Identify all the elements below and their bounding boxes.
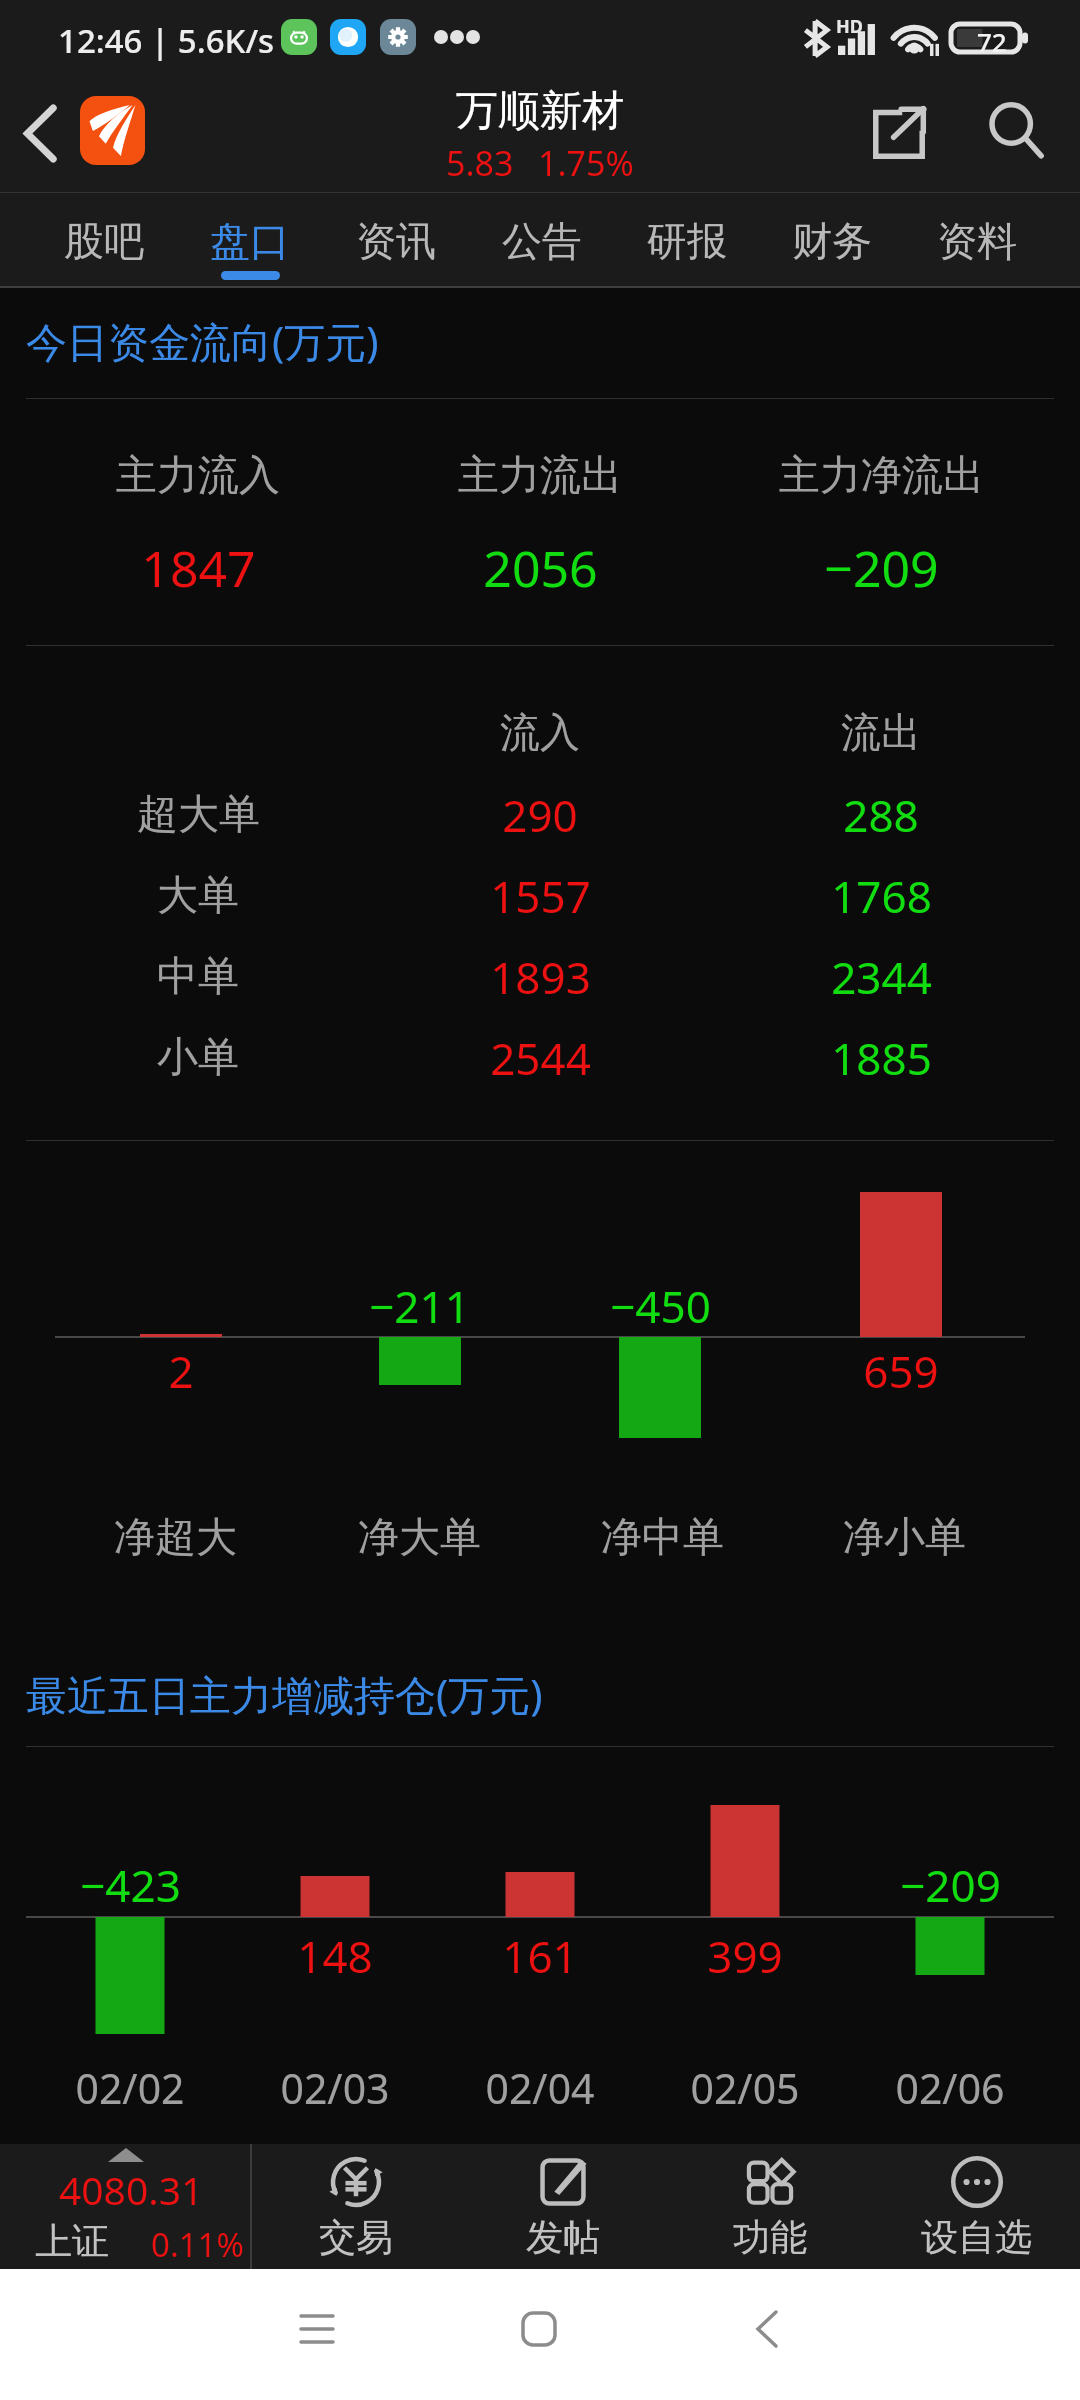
staticText: HD	[836, 14, 863, 39]
button[interactable]: 4080.31	[0, 2144, 250, 2269]
staticText: 1557	[490, 866, 591, 926]
button[interactable]: Home	[479, 2289, 599, 2369]
staticText: 2	[168, 1341, 194, 1401]
staticText: 净大单	[358, 1512, 481, 1564]
staticText: 超大单	[137, 789, 260, 841]
button[interactable]: 功能	[666, 2144, 873, 2269]
button[interactable]: Share	[859, 93, 939, 173]
staticText: 财务	[792, 216, 872, 266]
staticText: 2544	[490, 1028, 591, 1088]
staticText: 流入	[500, 707, 580, 757]
button[interactable]: Back	[707, 2289, 827, 2369]
staticText: 02/03	[280, 2060, 390, 2116]
button[interactable]: Search	[976, 90, 1056, 170]
staticText: 02/05	[690, 2060, 800, 2116]
staticText: −211	[369, 1276, 470, 1336]
staticText: 1.75%	[538, 140, 634, 186]
button[interactable]	[0, 646, 1080, 1140]
staticText: −209	[900, 1855, 1001, 1915]
staticText: 小单	[157, 1032, 239, 1084]
staticText: 4080.31	[59, 2163, 204, 2216]
staticText: 02/02	[75, 2060, 185, 2116]
staticText: 流出	[841, 707, 921, 757]
button[interactable]: Net order-flow bar chart	[0, 1141, 1080, 1641]
staticText: 最近五日主力增减持仓(万元)	[26, 1666, 543, 1722]
staticText: 主力净流出	[779, 450, 984, 502]
staticText: 1768	[831, 866, 932, 926]
staticText: −450	[610, 1276, 711, 1336]
staticText: 大单	[157, 870, 239, 922]
staticText: 1893	[490, 947, 591, 1007]
button[interactable]: 交易	[252, 2144, 459, 2269]
button[interactable]: 财务	[759, 192, 904, 288]
staticText: 净超大	[114, 1512, 237, 1564]
staticText: 研报	[647, 216, 727, 266]
staticText: 万顺新材	[456, 85, 624, 138]
staticText: 659	[863, 1341, 939, 1401]
staticText: 290	[502, 785, 578, 845]
staticText: 股吧	[64, 216, 144, 266]
staticText: −423	[80, 1855, 181, 1915]
button[interactable]: Eastmoney home	[80, 96, 145, 165]
staticText: 净中单	[601, 1512, 724, 1564]
staticText: 设自选	[921, 2214, 1032, 2261]
staticText: 1885	[831, 1028, 932, 1088]
staticText: 发帖	[526, 2214, 600, 2261]
staticText: 02/06	[895, 2060, 1005, 2116]
staticText: 161	[502, 1926, 578, 1986]
staticText: 交易	[319, 2214, 393, 2261]
button[interactable]: Five-day position change chart	[0, 1747, 1080, 2137]
staticText: 今日资金流向(万元)	[26, 313, 379, 369]
staticText: 资料	[937, 216, 1017, 266]
staticText: −209	[824, 534, 939, 602]
button[interactable]: 研报	[614, 192, 759, 288]
staticText: 2056	[483, 534, 598, 602]
staticText: 12:46 | 5.6K/s	[58, 18, 275, 63]
button[interactable]: 设自选	[873, 2144, 1080, 2269]
staticText: 资讯	[356, 216, 436, 266]
button[interactable]	[0, 399, 1080, 645]
staticText: 02/04	[485, 2060, 595, 2116]
staticText: 399	[707, 1926, 783, 1986]
staticText: 0.11%	[151, 2222, 244, 2267]
button[interactable]: 资料	[904, 192, 1049, 288]
staticText: 72	[977, 24, 1007, 52]
staticText: 1847	[141, 534, 256, 602]
staticText: 主力流入	[116, 450, 280, 502]
staticText: 公告	[502, 216, 582, 266]
button[interactable]: 盘口	[177, 192, 323, 288]
staticText: 148	[297, 1926, 373, 1986]
button[interactable]: Back	[6, 98, 76, 168]
staticText: 2344	[831, 947, 932, 1007]
staticText: 功能	[733, 2214, 807, 2261]
staticText: 主力流出	[458, 450, 622, 502]
staticText: 盘口	[210, 216, 290, 266]
button[interactable]: 公告	[469, 192, 614, 288]
button[interactable]: Recent apps	[257, 2289, 377, 2369]
staticText: 中单	[157, 951, 239, 1003]
staticText: 5.83	[446, 140, 514, 186]
staticText: 288	[843, 785, 919, 845]
button[interactable]: 发帖	[459, 2144, 666, 2269]
staticText: 上证	[35, 2218, 109, 2265]
button[interactable]: 股吧	[31, 192, 177, 288]
staticText: 净小单	[843, 1512, 966, 1564]
button[interactable]: 资讯	[323, 192, 469, 288]
